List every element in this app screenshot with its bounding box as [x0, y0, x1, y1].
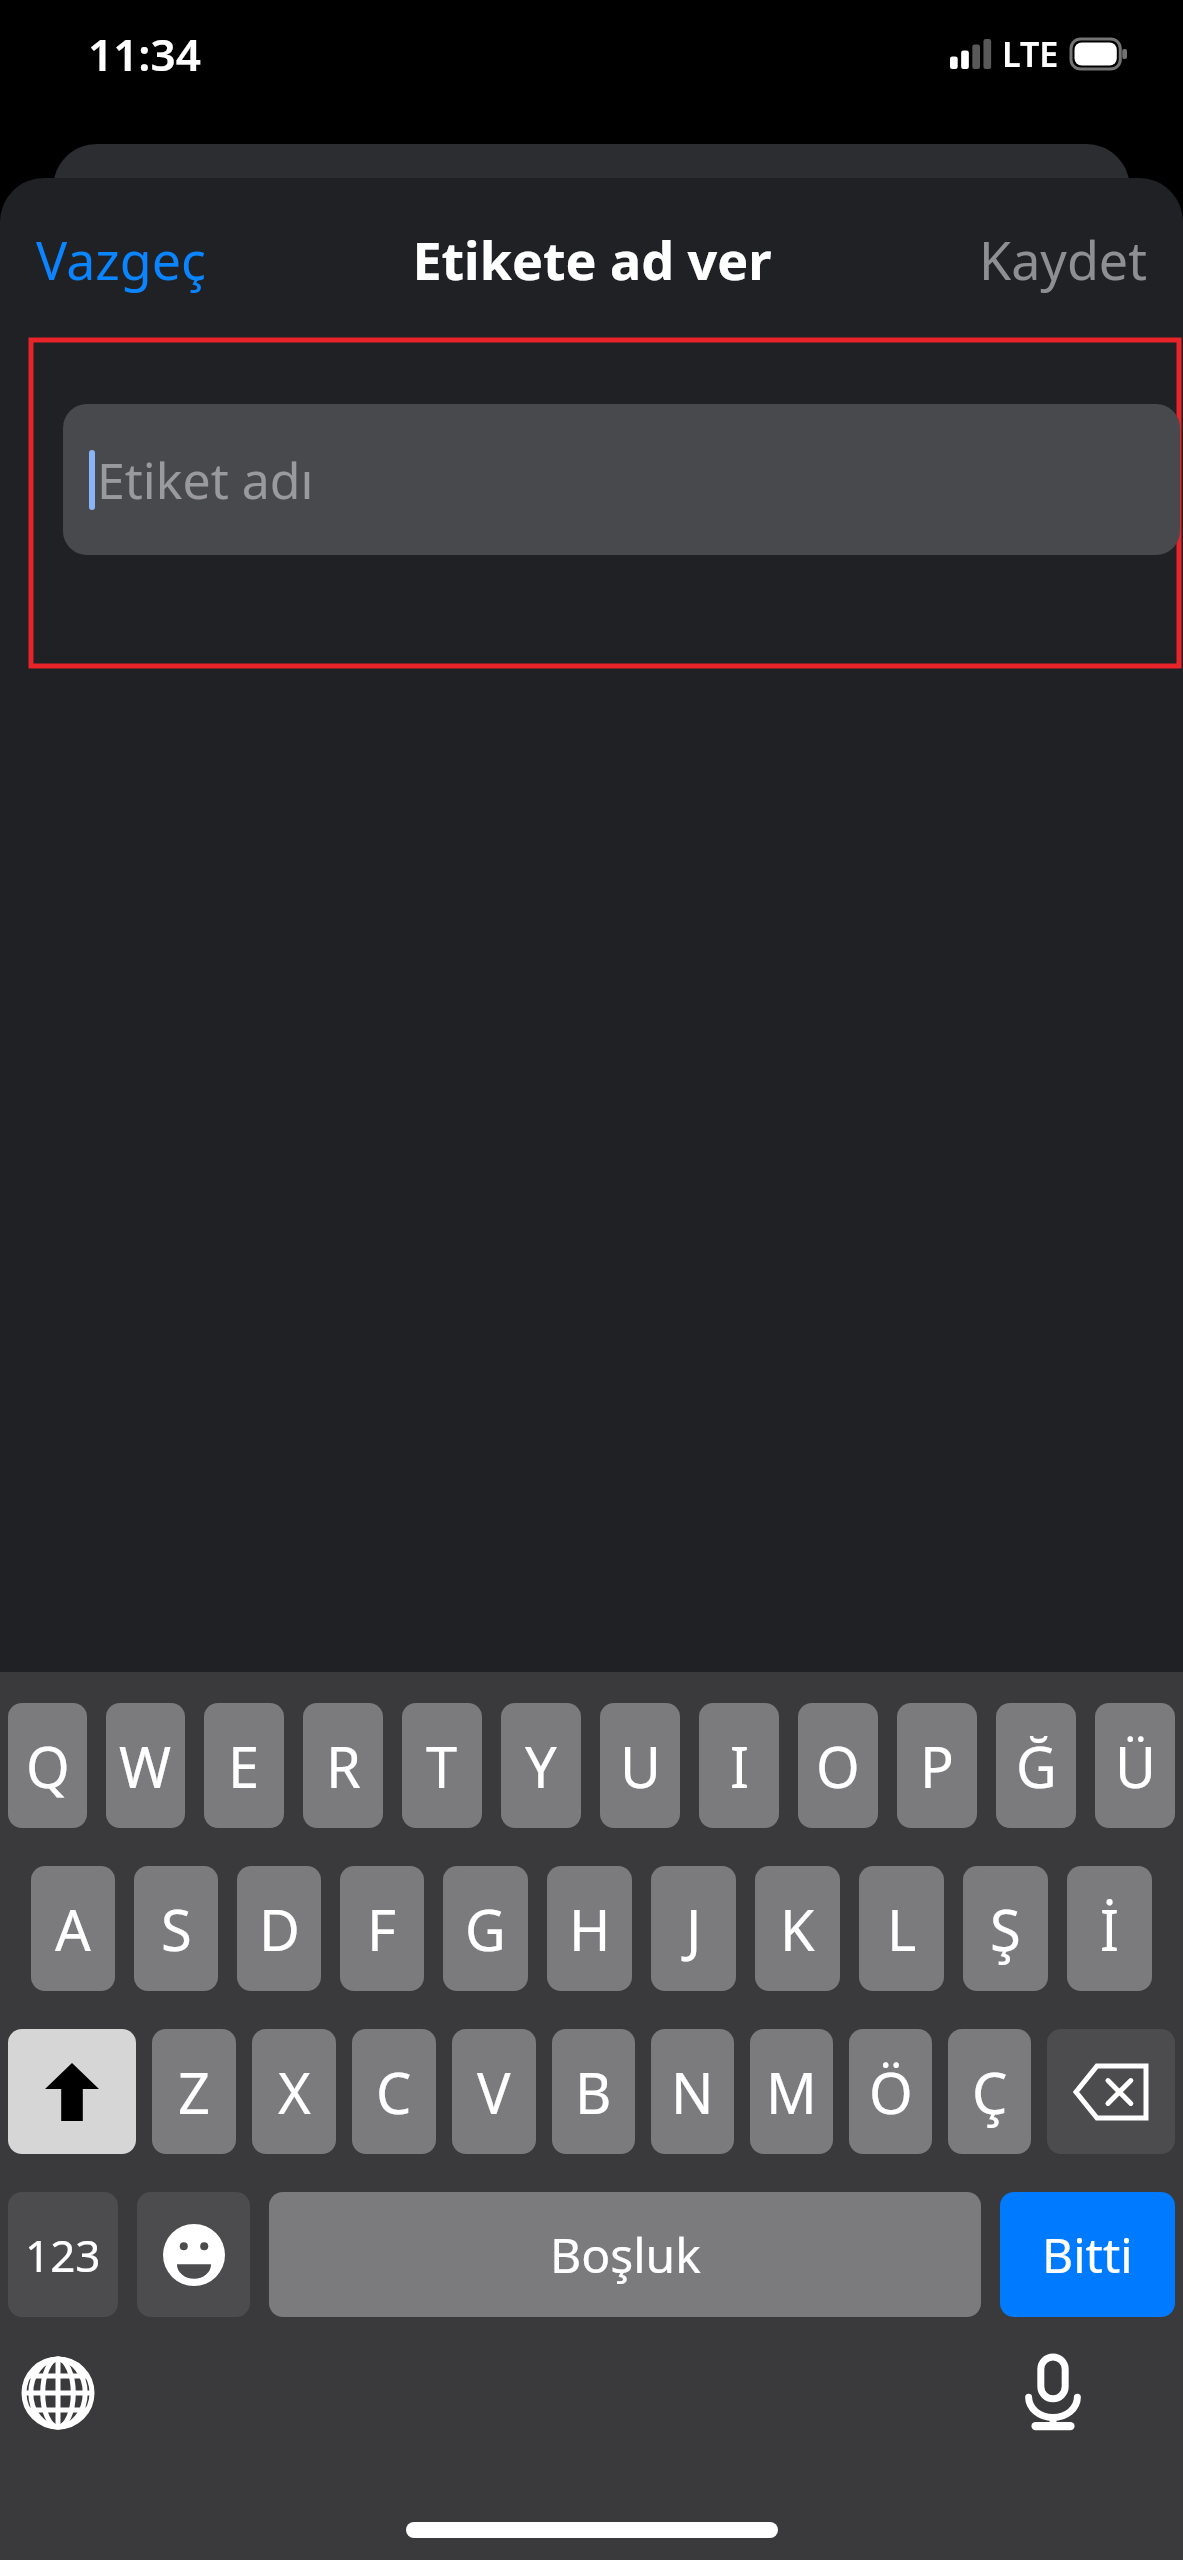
button[interactable]: Z: [152, 2029, 236, 2154]
staticText: N: [671, 2054, 714, 2130]
staticText: Q: [26, 1728, 70, 1804]
staticText: Ş: [990, 1891, 1021, 1967]
staticText: Bitti: [1042, 2222, 1133, 2287]
staticText: I: [730, 1728, 749, 1804]
staticText: Boşluk: [550, 2222, 701, 2287]
button[interactable]: Boşluk: [269, 2192, 981, 2317]
button[interactable]: I: [699, 1703, 779, 1828]
button[interactable]: U: [600, 1703, 680, 1828]
button[interactable]: Ü: [1095, 1703, 1175, 1828]
button[interactable]: G: [443, 1866, 528, 1991]
staticText: 11:34: [88, 24, 201, 84]
staticText: M: [766, 2054, 817, 2130]
staticText: B: [575, 2054, 612, 2130]
button[interactable]: O: [798, 1703, 878, 1828]
staticText: G: [465, 1891, 506, 1967]
staticText: Etikete ad ver: [412, 224, 772, 295]
staticText: U: [620, 1728, 661, 1804]
staticText: Y: [525, 1728, 557, 1804]
staticText: Kaydet: [979, 224, 1147, 295]
staticText: L: [887, 1891, 917, 1967]
button[interactable]: Q: [8, 1703, 87, 1828]
button[interactable]: X: [252, 2029, 336, 2154]
button[interactable]: S: [134, 1866, 218, 1991]
staticText: X: [278, 2054, 311, 2130]
button[interactable]: V: [452, 2029, 536, 2154]
staticText: S: [161, 1891, 192, 1967]
staticText: F: [367, 1891, 397, 1967]
button[interactable]: Ş: [963, 1866, 1048, 1991]
staticText: Ç: [972, 2054, 1008, 2130]
button[interactable]: Backspace: [1047, 2029, 1175, 2154]
button[interactable]: W: [106, 1703, 185, 1828]
staticText: R: [326, 1728, 361, 1804]
button[interactable]: N: [651, 2029, 734, 2154]
button[interactable]: A: [31, 1866, 115, 1991]
button[interactable]: 123: [8, 2192, 118, 2317]
button[interactable]: Dictation: [1015, 2355, 1091, 2431]
staticText: İ: [1100, 1891, 1119, 1967]
staticText: K: [780, 1891, 815, 1967]
button[interactable]: Bitti: [1000, 2192, 1175, 2317]
staticText: A: [55, 1891, 91, 1967]
button[interactable]: Change keyboard: [20, 2355, 96, 2431]
staticText: D: [259, 1891, 300, 1967]
button[interactable]: Etiket adı: [63, 404, 1180, 555]
button[interactable]: F: [340, 1866, 424, 1991]
staticText: Ü: [1115, 1728, 1156, 1804]
button[interactable]: L: [859, 1866, 944, 1991]
staticText: V: [477, 2054, 511, 2130]
staticText: Vazgeç: [36, 224, 207, 295]
button[interactable]: Shift: [8, 2029, 136, 2154]
button[interactable]: Ç: [948, 2029, 1031, 2154]
button[interactable]: Emoji: [137, 2192, 250, 2317]
button[interactable]: H: [547, 1866, 632, 1991]
button[interactable]: Ğ: [996, 1703, 1076, 1828]
staticText: Etiket adı: [97, 446, 314, 514]
button[interactable]: Kaydet: [943, 202, 1183, 317]
button[interactable]: R: [303, 1703, 383, 1828]
staticText: W: [119, 1728, 172, 1804]
button[interactable]: M: [750, 2029, 833, 2154]
staticText: O: [816, 1728, 860, 1804]
button[interactable]: J: [651, 1866, 736, 1991]
staticText: T: [426, 1728, 458, 1804]
button[interactable]: C: [352, 2029, 436, 2154]
staticText: H: [569, 1891, 611, 1967]
staticText: Ğ: [1016, 1728, 1057, 1804]
staticText: E: [228, 1728, 260, 1804]
button[interactable]: K: [755, 1866, 840, 1991]
staticText: J: [686, 1891, 702, 1967]
button[interactable]: D: [237, 1866, 321, 1991]
staticText: P: [920, 1728, 954, 1804]
button[interactable]: Vazgeç: [0, 202, 243, 317]
staticText: Ö: [869, 2054, 913, 2130]
staticText: Z: [178, 2054, 211, 2130]
button[interactable]: İ: [1067, 1866, 1152, 1991]
staticText: C: [376, 2054, 412, 2130]
button[interactable]: T: [402, 1703, 482, 1828]
button[interactable]: Ö: [849, 2029, 932, 2154]
button[interactable]: E: [204, 1703, 284, 1828]
button[interactable]: P: [897, 1703, 977, 1828]
button[interactable]: B: [552, 2029, 635, 2154]
staticText: LTE: [1002, 31, 1059, 77]
button[interactable]: Y: [501, 1703, 581, 1828]
staticText: 123: [25, 2225, 101, 2285]
